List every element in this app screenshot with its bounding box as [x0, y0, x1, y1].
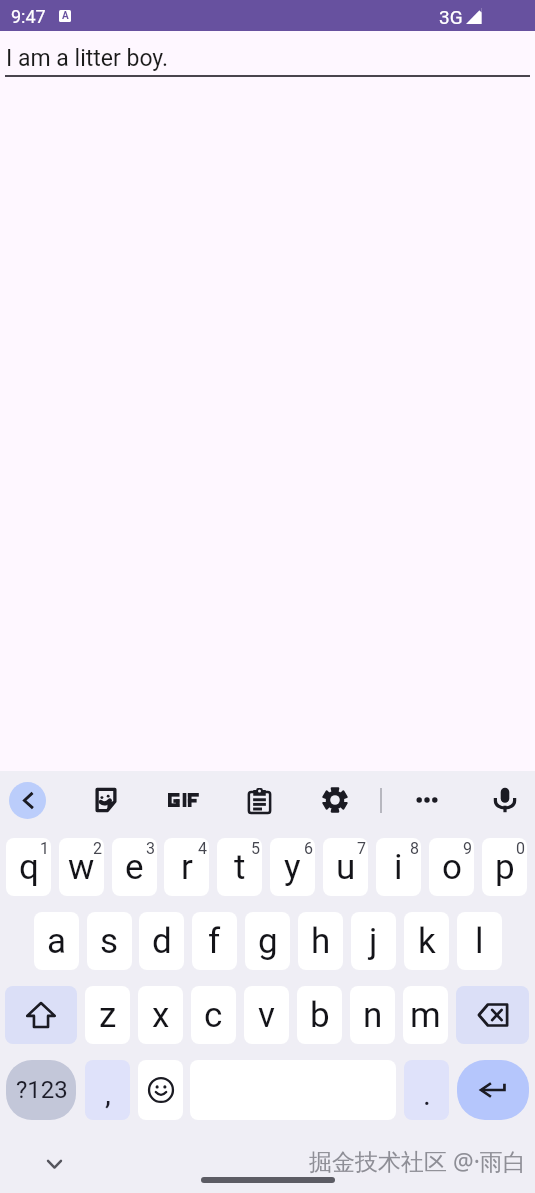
staticText: m — [410, 995, 441, 1036]
staticText: r — [181, 847, 193, 888]
button[interactable]: , — [85, 1060, 130, 1120]
button[interactable]: I am a litter boy. — [0, 31, 535, 79]
button[interactable]: . — [404, 1060, 449, 1120]
staticText: 7 — [357, 839, 366, 858]
button[interactable]: Clipboard — [237, 778, 281, 822]
staticText: c — [204, 995, 223, 1036]
staticText: h — [311, 921, 331, 962]
staticText: l — [475, 921, 484, 962]
button[interactable]: Emoji — [138, 1060, 183, 1120]
button[interactable]: q — [6, 838, 51, 896]
staticText: . — [423, 1077, 431, 1112]
button[interactable]: j — [351, 912, 396, 970]
staticText: 0 — [516, 839, 525, 858]
staticText: w — [68, 847, 95, 888]
button[interactable]: Hide keyboard — [39, 1149, 69, 1179]
staticText: I am a litter boy. — [6, 45, 169, 72]
staticText: p — [495, 847, 515, 888]
button[interactable]: Enter — [457, 1060, 529, 1120]
staticText: a — [47, 921, 67, 962]
staticText: 1 — [40, 839, 49, 858]
staticText: z — [99, 995, 117, 1036]
button[interactable]: GIF — [161, 778, 205, 822]
button[interactable]: Settings — [313, 778, 357, 822]
staticText: 3G — [439, 6, 463, 28]
button[interactable]: More options — [405, 778, 449, 822]
button[interactable]: ?123 — [6, 1060, 76, 1120]
button[interactable]: z — [85, 986, 130, 1044]
button[interactable]: s — [87, 912, 132, 970]
staticText: d — [152, 921, 172, 962]
button[interactable]: t — [217, 838, 262, 896]
button[interactable]: Shift — [5, 986, 77, 1044]
button[interactable]: c — [191, 986, 236, 1044]
button[interactable]: Back — [9, 782, 46, 819]
staticText: g — [258, 921, 278, 962]
button[interactable]: x — [138, 986, 183, 1044]
staticText: t — [234, 847, 246, 888]
button[interactable]: n — [350, 986, 395, 1044]
staticText: 掘金技术社区 @·雨白 — [309, 1145, 526, 1176]
button[interactable]: i — [376, 838, 421, 896]
staticText: 9 — [463, 839, 472, 858]
staticText: 3 — [146, 839, 155, 858]
button[interactable]: f — [192, 912, 237, 970]
button[interactable]: Stickers — [84, 778, 128, 822]
staticText: 2 — [93, 839, 102, 858]
staticText: i — [394, 847, 403, 888]
button[interactable]: d — [139, 912, 184, 970]
staticText: j — [369, 921, 378, 962]
staticText: n — [363, 995, 383, 1036]
button[interactable]: Backspace — [456, 986, 529, 1044]
button[interactable]: l — [457, 912, 502, 970]
button[interactable]: h — [298, 912, 343, 970]
button[interactable]: y — [270, 838, 315, 896]
button[interactable]: u — [323, 838, 368, 896]
button[interactable]: b — [297, 986, 342, 1044]
staticText: x — [152, 995, 170, 1036]
staticText: , — [105, 1076, 111, 1111]
button[interactable]: o — [429, 838, 474, 896]
button[interactable]: p — [482, 838, 527, 896]
button[interactable]: v — [244, 986, 289, 1044]
staticText: 8 — [410, 839, 419, 858]
staticText: o — [442, 847, 462, 888]
staticText: s — [100, 921, 119, 962]
staticText: q — [19, 847, 39, 888]
button[interactable]: m — [403, 986, 448, 1044]
staticText: e — [125, 847, 144, 888]
button[interactable]: e — [112, 838, 157, 896]
button[interactable]: Voice input — [483, 778, 527, 822]
staticText: f — [208, 921, 221, 962]
button[interactable]: g — [245, 912, 290, 970]
staticText: v — [258, 995, 275, 1036]
button[interactable]: w — [59, 838, 104, 896]
staticText: 6 — [304, 839, 313, 858]
staticText: 4 — [198, 839, 207, 858]
button[interactable]: k — [404, 912, 449, 970]
staticText: u — [336, 847, 356, 888]
button[interactable]: a — [34, 912, 79, 970]
staticText: 5 — [251, 839, 260, 858]
staticText: A — [62, 10, 69, 22]
staticText: b — [310, 995, 330, 1036]
staticText: k — [418, 921, 436, 962]
button[interactable]: r — [164, 838, 209, 896]
staticText: ?123 — [16, 1076, 68, 1104]
staticText: y — [284, 847, 301, 888]
staticText: 9:47 — [11, 6, 46, 27]
